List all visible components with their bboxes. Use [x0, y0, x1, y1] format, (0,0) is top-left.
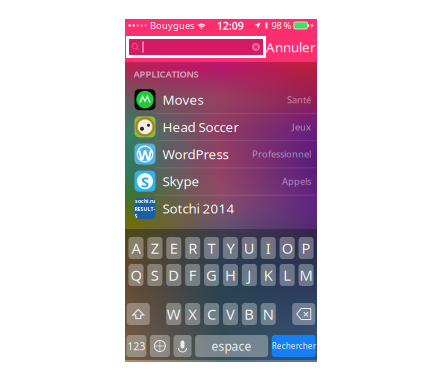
button[interactable]: H	[223, 264, 238, 286]
staticText: RESULTS	[134, 205, 155, 220]
staticText: 98 %	[271, 19, 291, 32]
button[interactable]: A	[128, 237, 143, 259]
button[interactable]: F	[185, 264, 200, 286]
staticText: sochi.ru	[135, 197, 155, 204]
staticText: R	[188, 238, 197, 258]
staticText: S	[151, 265, 159, 285]
staticText: P	[302, 238, 311, 258]
staticText: A	[131, 238, 140, 258]
staticText: U	[244, 238, 255, 258]
staticText: Skype	[162, 172, 199, 190]
staticText: V	[226, 304, 235, 324]
button[interactable]: Delete	[292, 303, 315, 325]
button[interactable]: B	[242, 303, 257, 325]
button[interactable]: L	[280, 264, 295, 286]
button[interactable]: K	[261, 264, 276, 286]
button[interactable]: T	[204, 237, 219, 259]
staticText: N	[263, 304, 274, 324]
staticText: Y	[226, 238, 234, 258]
staticText: H	[225, 265, 236, 285]
staticText: L	[283, 265, 291, 285]
button[interactable]: D	[166, 264, 181, 286]
staticText: T	[208, 238, 216, 258]
button[interactable]: N	[261, 303, 276, 325]
staticText: APPLICATIONS	[133, 68, 198, 80]
button[interactable]: W	[125, 140, 317, 168]
staticText: Head Soccer	[162, 118, 239, 136]
button[interactable]: Head Soccer	[125, 113, 317, 140]
staticText: Z	[151, 238, 159, 258]
button[interactable]: W	[166, 303, 181, 325]
button[interactable]: X	[185, 303, 200, 325]
staticText: Sotchi 2014	[162, 199, 234, 217]
staticText: D	[168, 265, 179, 285]
button[interactable]: Next keyboard	[150, 335, 170, 357]
staticText: C	[207, 304, 216, 324]
staticText: Rechercher	[272, 341, 316, 351]
staticText: I	[266, 238, 271, 258]
button[interactable]: Y	[223, 237, 238, 259]
button[interactable]: S	[147, 264, 162, 286]
button[interactable]: Dictate	[173, 335, 191, 357]
button[interactable]: 123	[126, 335, 146, 357]
button[interactable]: P	[298, 237, 314, 259]
button[interactable]: Rechercher	[272, 335, 316, 357]
staticText: W	[138, 145, 152, 164]
button[interactable]: espace	[195, 335, 268, 357]
button[interactable]: Q	[128, 264, 143, 286]
button[interactable]: J	[242, 264, 257, 286]
button[interactable]: Shift	[127, 303, 150, 325]
staticText: F	[189, 265, 197, 285]
staticText: Annuler	[266, 38, 316, 56]
staticText: Moves	[162, 91, 203, 108]
staticText: M	[300, 265, 313, 285]
button[interactable]: E	[166, 237, 181, 259]
staticText: espace	[212, 338, 252, 354]
staticText: 12:09	[217, 18, 244, 33]
button[interactable]: R	[185, 237, 200, 259]
button[interactable]: sochi.ru	[125, 195, 317, 222]
button[interactable]: G	[204, 264, 219, 286]
staticText: K	[264, 265, 273, 285]
staticText: Q	[130, 265, 141, 285]
button[interactable]: U	[242, 237, 257, 259]
staticText: Jeux	[292, 121, 311, 133]
button[interactable]: S	[125, 168, 317, 195]
staticText: X	[188, 304, 197, 324]
staticText: WordPress	[162, 145, 228, 163]
button[interactable]: O	[280, 237, 295, 259]
button[interactable]: V	[223, 303, 238, 325]
staticText: G	[206, 265, 217, 285]
staticText: O	[282, 238, 293, 258]
button[interactable]: Z	[147, 237, 162, 259]
button[interactable]: C	[204, 303, 219, 325]
staticText: E	[170, 238, 178, 258]
button[interactable]: Annuler	[267, 35, 315, 59]
staticText: J	[247, 265, 251, 285]
staticText: Bouygues	[150, 19, 194, 32]
staticText: 123	[127, 339, 145, 353]
button[interactable]: Moves	[125, 86, 317, 113]
button[interactable]: M	[298, 264, 314, 286]
staticText: B	[244, 304, 254, 324]
staticText: Appels	[282, 175, 311, 187]
staticText: S	[141, 172, 149, 191]
staticText: W	[167, 304, 181, 324]
button[interactable]: I	[261, 237, 276, 259]
staticText: Professionnel	[252, 148, 311, 160]
staticText: Santé	[287, 93, 311, 106]
